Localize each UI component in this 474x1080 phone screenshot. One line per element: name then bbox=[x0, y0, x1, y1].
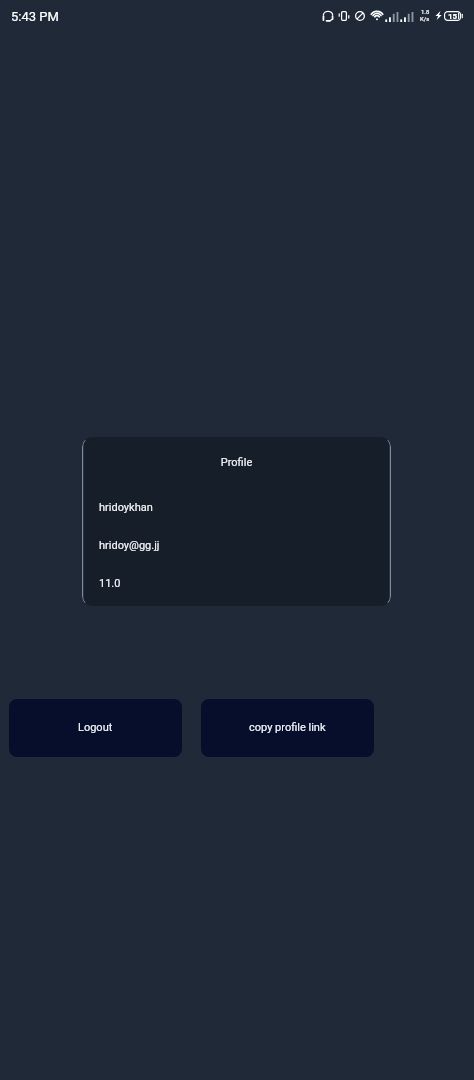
button[interactable]: copy profile link bbox=[201, 699, 374, 757]
staticText: 1.8 bbox=[421, 8, 430, 15]
staticText: Profile bbox=[82, 456, 391, 469]
staticText: K/s bbox=[420, 15, 430, 22]
staticText: hridoy@gg.jj bbox=[99, 539, 160, 552]
staticText: 11.0 bbox=[99, 577, 121, 590]
staticText: copy profile link bbox=[249, 721, 326, 734]
staticText: hridoykhan bbox=[99, 501, 153, 514]
button[interactable]: Logout bbox=[9, 699, 182, 757]
staticText: Logout bbox=[78, 721, 113, 734]
staticText: 5:43 PM bbox=[11, 9, 59, 24]
staticText: 15 bbox=[448, 12, 458, 21]
